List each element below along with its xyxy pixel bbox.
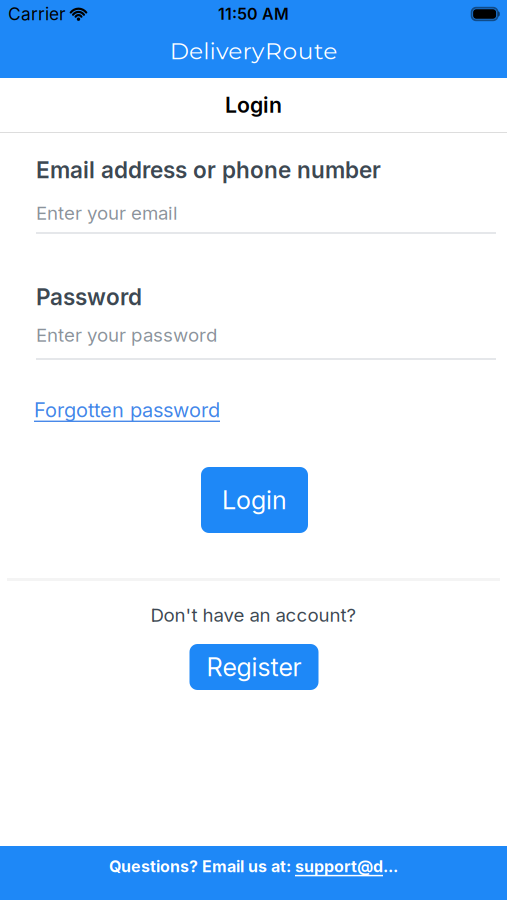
button[interactable]: Forgotten password [34, 398, 220, 422]
staticText: 11:50 AM [218, 5, 289, 23]
staticText: DeliveryRoute [170, 37, 337, 65]
staticText: Don't have an account? [150, 604, 356, 626]
staticText: Enter your password [36, 324, 217, 346]
button[interactable]: Questions? Email us at: support@d... [0, 846, 507, 900]
staticText: Enter your email [36, 202, 178, 224]
staticText: Forgotten password [34, 398, 220, 422]
staticText: Login [222, 485, 287, 515]
staticText: Carrier [8, 4, 66, 24]
staticText: Email address or phone number [36, 157, 381, 183]
staticText: Questions? Email us at: support@d... [109, 857, 398, 876]
staticText: Password [36, 284, 142, 310]
button[interactable]: Register [189, 644, 318, 690]
button[interactable]: Login [201, 467, 308, 533]
staticText: Login [225, 92, 282, 118]
staticText: Register [206, 652, 301, 682]
